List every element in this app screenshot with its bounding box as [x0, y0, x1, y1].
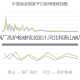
staticText: 中国煤炭国家平日新增规模指数: [12, 1, 68, 6]
staticText: 唐山 — 钢厂高炉: [7, 69, 37, 75]
staticText: 河北 — 高炉检修: [42, 69, 72, 75]
staticText: 河北和唐山钢厂高炉检修情况统计,河北和唐山钢厂高炉情概述: [0, 34, 80, 41]
